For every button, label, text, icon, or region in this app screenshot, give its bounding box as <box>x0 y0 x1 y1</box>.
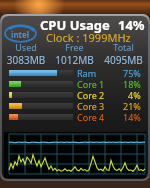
staticText: 1012MB <box>50 53 99 67</box>
staticText: 3083MB <box>2 53 50 67</box>
staticText: Core 4 <box>77 111 105 122</box>
staticText: Core 2 <box>77 89 105 100</box>
staticText: 21% <box>123 100 141 111</box>
staticText: 14% <box>123 111 141 122</box>
staticText: Ram <box>77 67 97 78</box>
staticText: Core 3 <box>77 100 105 111</box>
button[interactable]: Core 3 <box>2 100 148 111</box>
staticText: 4095MB <box>99 53 148 67</box>
staticText: Clock : 1999MHz <box>46 30 131 45</box>
staticText: Core 1 <box>77 78 105 89</box>
staticText: CPU Usage <box>40 16 110 34</box>
staticText: 4% <box>128 89 141 100</box>
button[interactable]: Core 2 <box>2 89 148 100</box>
button[interactable]: intel <box>2 16 148 179</box>
button[interactable]: Ram <box>2 67 148 78</box>
staticText: intel <box>11 29 30 40</box>
staticText: Free <box>50 41 99 53</box>
button[interactable]: Core 1 <box>2 78 148 89</box>
staticText: 14% <box>118 16 145 34</box>
staticText: Used <box>2 41 50 53</box>
button[interactable]: Core 4 <box>2 111 148 122</box>
staticText: Total <box>99 41 148 53</box>
staticText: 75% <box>123 67 141 78</box>
staticText: 18% <box>123 78 141 89</box>
